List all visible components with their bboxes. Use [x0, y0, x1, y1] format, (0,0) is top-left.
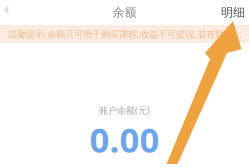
staticText: 明细 — [221, 5, 245, 20]
staticText: 温馨提示:余额只可用于购买课程,收益不可提现,若有疑问请联系客服处理哦 — [8, 28, 249, 40]
staticText: 0.00 — [89, 116, 159, 162]
staticText: 余额 — [112, 5, 136, 20]
staticText: 账户余额(元) — [99, 104, 150, 116]
button[interactable]: 明细 — [217, 0, 249, 25]
button[interactable]: Back — [0, 0, 20, 25]
